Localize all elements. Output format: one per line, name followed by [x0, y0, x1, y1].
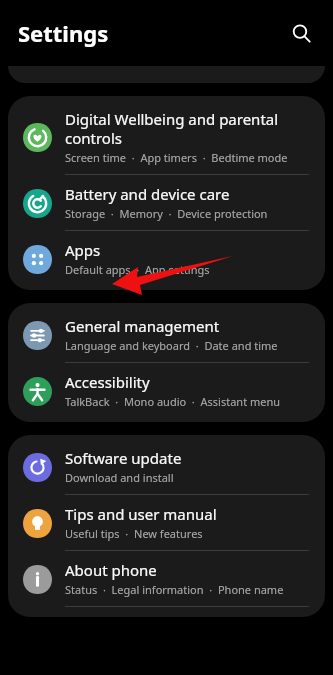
staticText: Useful tips · New features — [65, 526, 203, 541]
staticText: Download and install — [65, 470, 174, 485]
staticText: TalkBack · Mono audio · Assistant menu — [65, 394, 281, 409]
button[interactable]: Digital Wellbeing and parental controls — [8, 100, 325, 174]
staticText: Screen time · App timers · Bedtime mode — [65, 150, 288, 165]
button[interactable]: Software update — [8, 439, 325, 494]
staticText: Digital Wellbeing and parental controls — [65, 109, 279, 148]
staticText: Tips and user manual — [65, 504, 217, 524]
button[interactable]: Apps — [8, 231, 325, 286]
staticText: Software update — [65, 448, 182, 468]
button[interactable]: Search — [283, 15, 319, 51]
staticText: General management — [65, 316, 220, 336]
staticText: Apps — [65, 240, 101, 260]
staticText: Status · Legal information · Phone name — [65, 582, 284, 597]
staticText: Default apps · App settings — [65, 262, 210, 277]
button[interactable]: Accessibility — [8, 363, 325, 418]
button[interactable]: General management — [8, 307, 325, 362]
staticText: Battery and device care — [65, 184, 230, 204]
staticText: About phone — [65, 560, 157, 580]
button[interactable]: Battery and device care — [8, 175, 325, 230]
button[interactable]: Tips and user manual — [8, 495, 325, 550]
staticText: Storage · Memory · Device protection — [65, 206, 268, 221]
staticText: Language and keyboard · Date and time — [65, 338, 278, 353]
staticText: Settings — [18, 18, 109, 48]
staticText: Accessibility — [65, 372, 150, 392]
button[interactable]: About phone — [8, 551, 325, 606]
